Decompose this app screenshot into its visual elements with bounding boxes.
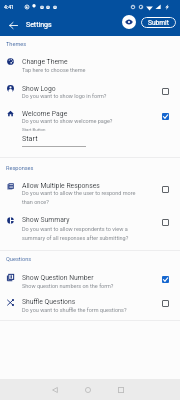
button[interactable]: Toggle xyxy=(158,215,172,229)
staticText: Show question numbers on the form? xyxy=(22,283,114,289)
button[interactable]: Toggle xyxy=(158,272,172,286)
staticText: Do you want to allow respondents to view… xyxy=(22,226,129,241)
button[interactable]: Back xyxy=(47,382,63,398)
staticText: Start Button xyxy=(22,127,46,132)
staticText: Welcome Page xyxy=(22,110,68,118)
staticText: Do you want to allow the user to respond… xyxy=(22,190,136,205)
button[interactable]: Preview xyxy=(122,15,136,29)
button[interactable]: Show Summary xyxy=(22,216,70,224)
staticText: Submit xyxy=(148,19,169,27)
button[interactable]: Shuffle Questions xyxy=(22,298,76,306)
button[interactable]: Change Theme xyxy=(22,58,68,66)
staticText: Do you want to show welcome page? xyxy=(22,118,113,124)
staticText: Allow Multiple Responses xyxy=(22,182,100,190)
staticText: Themes xyxy=(6,41,27,48)
staticText: Show Summary xyxy=(22,216,70,224)
button[interactable]: Welcome Page xyxy=(22,110,68,118)
button[interactable]: Toggle xyxy=(158,182,172,196)
staticText: Do you want to show logo in form? xyxy=(22,93,107,99)
staticText: Responses xyxy=(6,165,34,172)
button[interactable]: Submit xyxy=(141,17,176,28)
button[interactable]: Show Logo xyxy=(22,85,56,93)
staticText: Shuffle Questions xyxy=(22,298,76,306)
staticText: 4:41 xyxy=(4,4,15,10)
button[interactable]: Home xyxy=(80,382,96,398)
staticText: Settings xyxy=(26,21,52,29)
button[interactable]: Back xyxy=(5,17,21,33)
button[interactable]: Toggle xyxy=(158,109,172,123)
button[interactable]: Recents xyxy=(113,382,129,398)
button[interactable]: Show Question Number xyxy=(22,274,94,282)
staticText: Start xyxy=(22,134,38,142)
staticText: Questions xyxy=(6,256,32,263)
button[interactable]: Toggle xyxy=(158,84,172,98)
button[interactable]: Allow Multiple Responses xyxy=(22,182,100,190)
staticText: Show Logo xyxy=(22,85,56,93)
staticText: Do you want to shuffle the form question… xyxy=(22,307,127,313)
button[interactable]: Toggle xyxy=(158,296,172,310)
staticText: Show Question Number xyxy=(22,274,94,282)
staticText: Change Theme xyxy=(22,58,68,66)
staticText: Tap here to choose theme xyxy=(22,67,86,73)
